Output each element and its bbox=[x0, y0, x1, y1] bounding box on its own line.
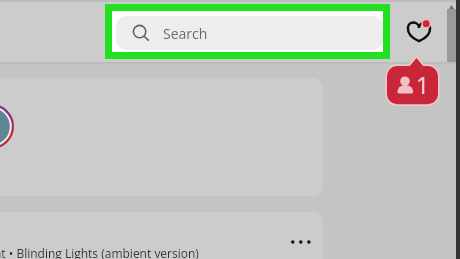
button[interactable]: Search bbox=[116, 16, 383, 50]
button[interactable]: Your story bbox=[0, 104, 14, 149]
button[interactable] bbox=[0, 78, 323, 196]
button[interactable]: Activity bbox=[403, 16, 435, 46]
staticText: Search bbox=[163, 24, 208, 43]
button[interactable]: More options bbox=[286, 232, 316, 252]
staticText: nt • Blinding Lights (ambient version) bbox=[0, 245, 199, 259]
staticText: 1 bbox=[416, 69, 430, 100]
button[interactable]: 1 follow request bbox=[384, 56, 440, 106]
button[interactable] bbox=[0, 212, 323, 259]
